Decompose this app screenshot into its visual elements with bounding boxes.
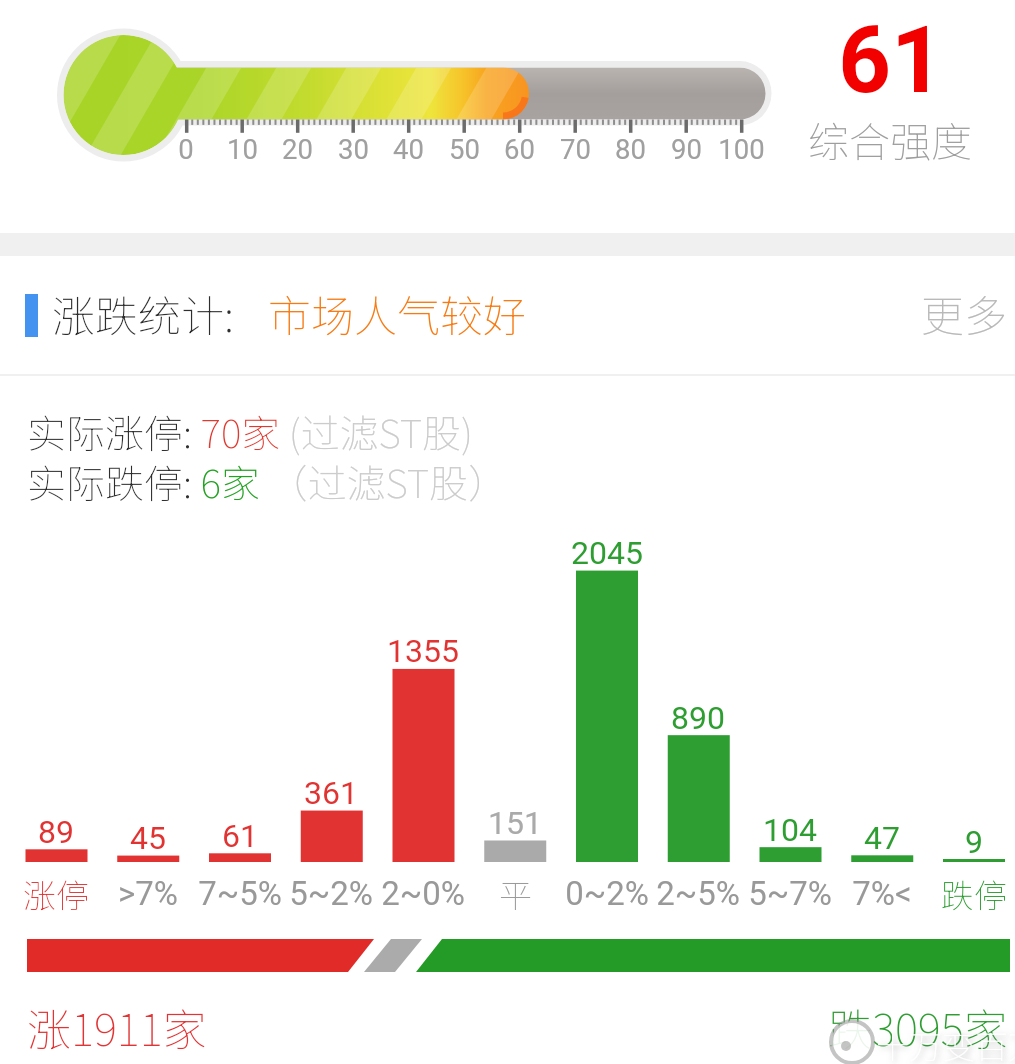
staticText: 7~5% xyxy=(198,874,282,913)
staticText: 20 xyxy=(282,133,313,165)
staticText: >7% xyxy=(118,874,178,913)
staticText: 151 xyxy=(488,804,542,842)
staticText: 361 xyxy=(304,774,358,812)
staticText: 2045 xyxy=(571,534,643,572)
staticText: 61 xyxy=(222,817,258,855)
staticText: 30 xyxy=(338,133,369,165)
staticText: 45 xyxy=(130,819,166,857)
staticText: 9 xyxy=(965,823,983,861)
staticText: 涨跌统计: xyxy=(52,282,234,344)
button[interactable]: 更多 xyxy=(921,282,1013,340)
staticText: 2~0% xyxy=(381,874,465,913)
staticText: 2~5% xyxy=(656,874,740,913)
staticText: 7%< xyxy=(852,874,912,913)
staticText: 十万变百万 xyxy=(876,1021,1015,1064)
staticText: 综合强度 xyxy=(808,109,972,168)
staticText: 40 xyxy=(393,133,424,165)
staticText: 涨停 xyxy=(23,870,89,918)
staticText: 80 xyxy=(615,133,646,165)
staticText: 61 xyxy=(838,7,944,115)
staticText: 跌3095家 xyxy=(828,995,1008,1059)
staticText: 5~2% xyxy=(289,874,373,913)
staticText: 0~2% xyxy=(565,874,649,913)
staticText: 0 xyxy=(178,133,194,165)
staticText: 实际跌停: 6家 （过滤ST股） xyxy=(27,453,508,509)
staticText: 实际涨停: 70家 (过滤ST股) xyxy=(27,403,473,459)
staticText: 60 xyxy=(504,133,535,165)
staticText: 890 xyxy=(671,699,725,737)
staticText: 涨1911家 xyxy=(27,995,207,1059)
staticText: 更多 xyxy=(921,282,1007,340)
staticText: 100 xyxy=(718,133,765,165)
staticText: 89 xyxy=(38,813,74,851)
staticText: 10 xyxy=(227,133,258,165)
staticText: 47 xyxy=(864,819,900,857)
staticText: 市场人气较好 xyxy=(268,282,526,344)
staticText: 跌停 xyxy=(941,870,1007,918)
staticText: 1355 xyxy=(387,632,459,670)
staticText: 104 xyxy=(763,811,817,849)
staticText: 平 xyxy=(499,870,532,918)
staticText: 5~7% xyxy=(748,874,832,913)
staticText: 90 xyxy=(671,133,702,165)
staticText: 50 xyxy=(449,133,480,165)
staticText: 70 xyxy=(560,133,591,165)
